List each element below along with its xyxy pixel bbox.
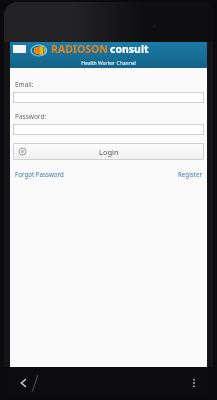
button[interactable]: Text field (13, 92, 204, 103)
button[interactable]: Home (30, 373, 40, 393)
staticText: Email: (15, 80, 34, 89)
staticText: Register (178, 170, 202, 178)
staticText: Login (99, 147, 119, 157)
button[interactable]: More options (187, 376, 201, 390)
button[interactable]: Forgot Password (15, 170, 64, 178)
staticText: RADIOSON (51, 42, 108, 56)
staticText: Health Worker Channel (10, 60, 207, 67)
button[interactable]: Register (178, 170, 202, 178)
button[interactable]: Text field (13, 124, 204, 135)
staticText: Password: (15, 112, 47, 121)
staticText: consult (110, 42, 149, 56)
staticText: Forgot Password (15, 170, 64, 178)
button[interactable]: Login (13, 143, 204, 160)
button[interactable]: Back (16, 375, 32, 391)
